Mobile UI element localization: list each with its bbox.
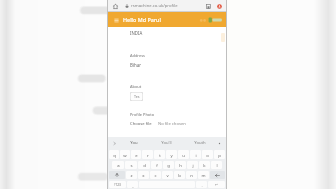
button[interactable]: b: [174, 171, 185, 179]
button[interactable]: l: [211, 161, 222, 169]
button[interactable]: f: [151, 161, 162, 169]
staticText: No file chosen: [158, 121, 186, 127]
button[interactable]: y: [166, 150, 177, 159]
staticText: .: [201, 182, 203, 188]
staticText: q: [113, 152, 116, 158]
staticText: d: [143, 162, 146, 168]
staticText: INDIA: [130, 30, 143, 36]
staticText: b: [178, 172, 181, 178]
staticText: rsmachine.co.uk/profile: [131, 3, 178, 9]
button[interactable]: ↵: [208, 181, 225, 188]
button[interactable]: u: [178, 150, 189, 159]
staticText: e: [135, 152, 138, 158]
button[interactable]: s: [125, 161, 137, 169]
staticText: u: [182, 152, 185, 158]
staticText: ?123: [114, 183, 121, 187]
button[interactable]: Choose file: [130, 121, 152, 127]
button[interactable]: ,: [127, 181, 138, 188]
staticText: o: [206, 152, 209, 158]
button[interactable]: You'll: [150, 140, 183, 146]
button[interactable]: Tes: [130, 92, 143, 101]
staticText: f: [156, 162, 158, 168]
button[interactable]: Youth: [183, 140, 216, 146]
button[interactable]: Notifications: [199, 16, 207, 24]
staticText: Tes: [134, 94, 140, 99]
staticText: m: [201, 172, 206, 178]
button[interactable]: t: [154, 150, 165, 159]
staticText: p: [218, 152, 221, 158]
button[interactable]: h: [175, 161, 186, 169]
button[interactable]: j: [187, 161, 198, 169]
button[interactable]: k: [199, 161, 210, 169]
button[interactable]: Save page: [204, 2, 212, 10]
staticText: Profile Photo: [130, 112, 155, 117]
staticText: c: [154, 172, 157, 178]
staticText: x: [142, 172, 145, 178]
staticText: ↵: [215, 183, 218, 187]
staticText: Address: [130, 53, 145, 58]
button[interactable]: n: [186, 171, 197, 179]
staticText: y: [170, 152, 173, 158]
button[interactable]: Shift: [109, 171, 125, 179]
staticText: Hello Md Parul: [123, 16, 161, 23]
button[interactable]: ?123: [109, 181, 126, 188]
staticText: l: [216, 162, 218, 168]
button[interactable]: g: [163, 161, 174, 169]
button[interactable]: q: [109, 150, 119, 159]
staticText: ,: [132, 182, 134, 188]
button[interactable]: You: [118, 140, 150, 146]
button[interactable]: e: [131, 150, 141, 159]
button[interactable]: c: [150, 171, 161, 179]
staticText: Youth: [194, 140, 206, 146]
button[interactable]: w: [120, 150, 130, 159]
button[interactable]: i: [190, 150, 201, 159]
button[interactable]: Keyboard settings: [216, 140, 223, 147]
staticText: j: [192, 162, 194, 168]
button[interactable]: x: [138, 171, 149, 179]
button[interactable]: r: [142, 150, 153, 159]
button[interactable]: Menu: [111, 15, 121, 25]
staticText: z: [130, 172, 133, 178]
staticText: You: [130, 140, 138, 146]
staticText: r: [147, 152, 149, 158]
staticText: i: [195, 152, 197, 158]
staticText: a: [117, 162, 120, 168]
staticText: Choose file: [130, 121, 152, 127]
button[interactable]: Account: [215, 2, 223, 10]
button[interactable]: Home: [111, 2, 120, 11]
button[interactable]: m: [198, 171, 209, 179]
button[interactable]: z: [126, 171, 137, 179]
button[interactable]: Backspace: [210, 171, 225, 179]
button[interactable]: a: [112, 161, 124, 169]
staticText: w: [123, 152, 127, 158]
staticText: About: [130, 84, 142, 89]
staticText: v: [166, 172, 169, 178]
staticText: k: [203, 162, 206, 168]
staticText: h: [179, 162, 182, 168]
button[interactable]: Logo: [208, 16, 223, 24]
button[interactable]: v: [162, 171, 173, 179]
button[interactable]: More suggestions: [111, 140, 118, 147]
staticText: You'll: [161, 140, 172, 146]
staticText: g: [167, 162, 170, 168]
button[interactable]: p: [214, 150, 225, 159]
staticText: t: [159, 152, 161, 158]
staticText: s: [130, 162, 133, 168]
button[interactable]: o: [202, 150, 213, 159]
staticText: Bihar: [130, 62, 141, 68]
staticText: n: [190, 172, 193, 178]
button[interactable]: d: [138, 161, 150, 169]
